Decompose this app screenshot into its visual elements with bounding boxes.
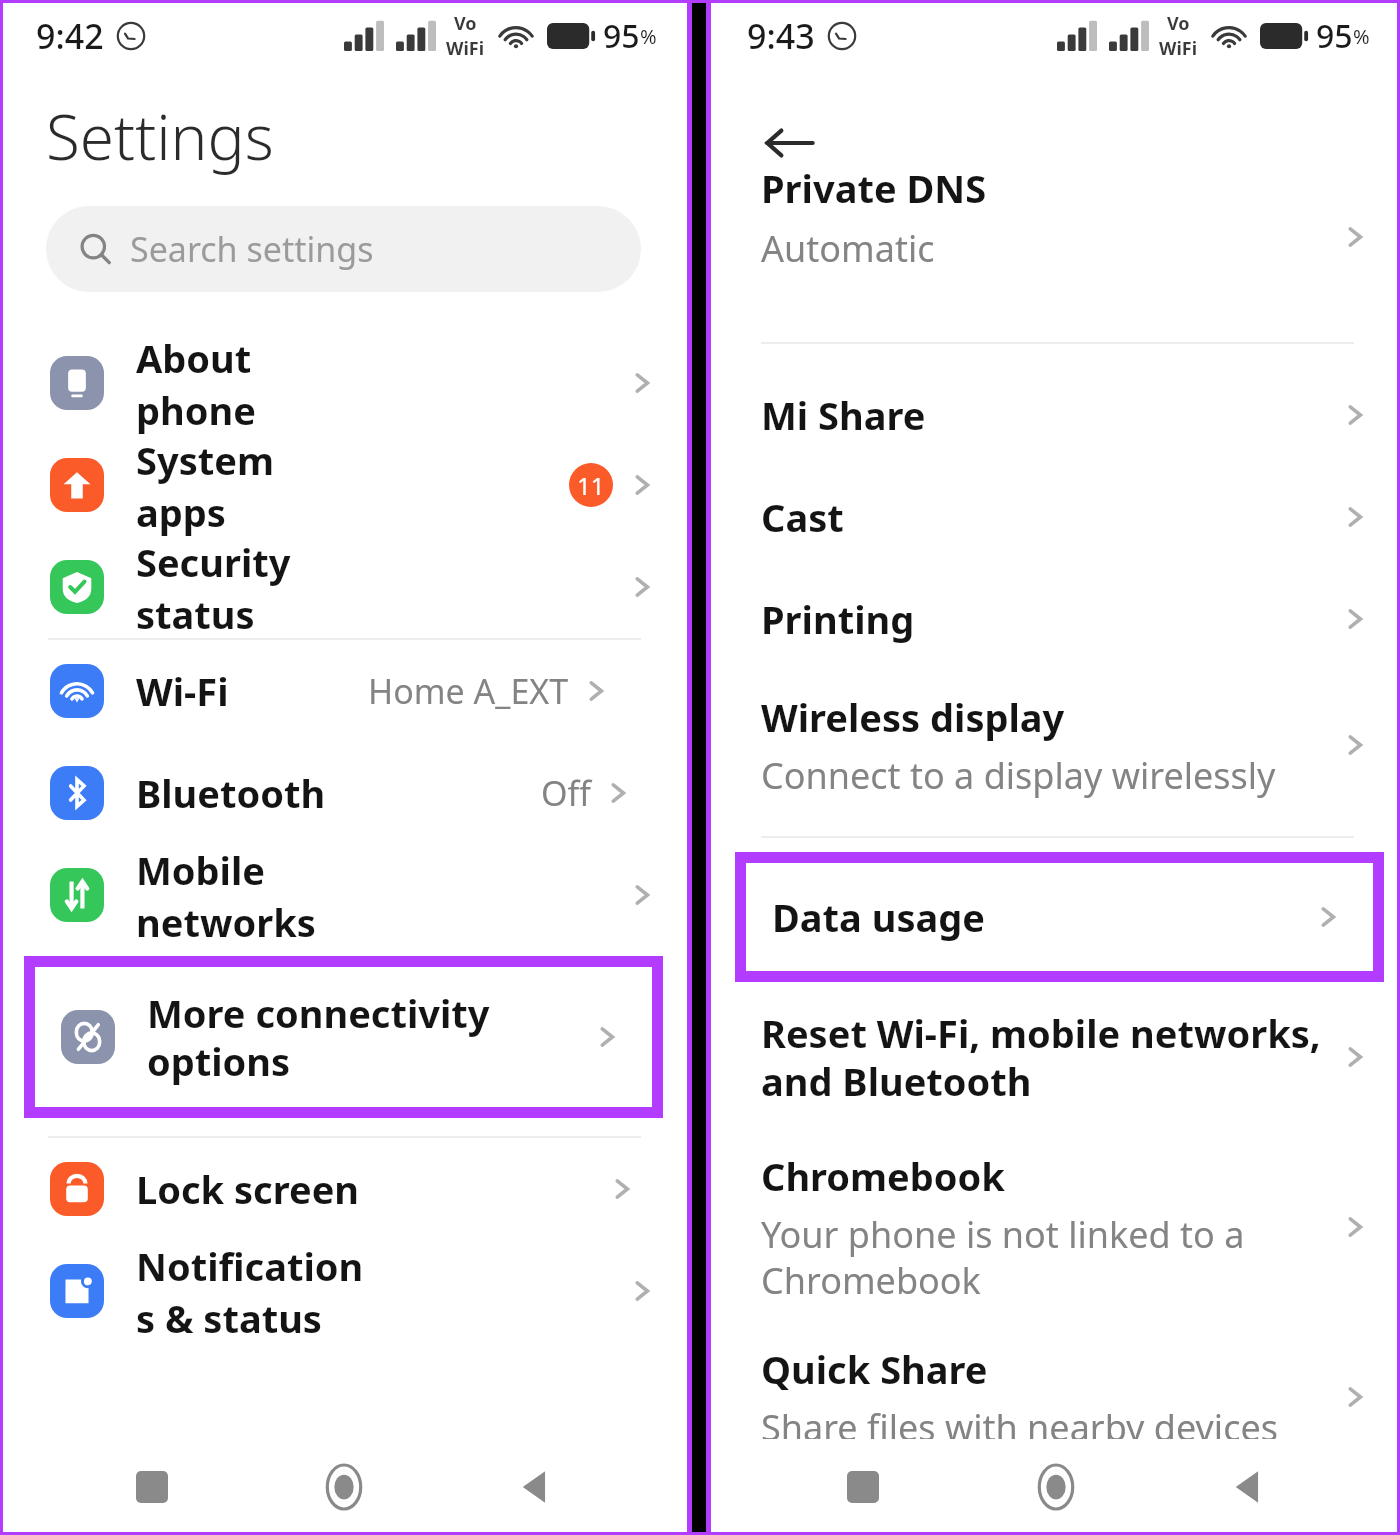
button[interactable]: Private DNS xyxy=(711,186,1400,316)
staticText: Vo xyxy=(1167,11,1190,36)
button[interactable]: Wireless display xyxy=(711,670,1400,820)
button[interactable]: Wi-Fi xyxy=(0,640,687,742)
staticText: Wireless display xyxy=(761,691,1065,743)
staticText: Bluetooth xyxy=(136,767,326,819)
staticText: Mobile networks xyxy=(136,844,380,946)
staticText: System apps updater xyxy=(136,434,352,536)
staticText: Quick Share xyxy=(761,1343,988,1395)
button[interactable]: Lock screen xyxy=(0,1138,687,1240)
staticText: 95 xyxy=(1316,14,1353,58)
button[interactable]: Quick Share xyxy=(711,1322,1400,1472)
staticText: Data usage xyxy=(772,891,1311,943)
staticText: WiFi xyxy=(1159,36,1198,61)
button[interactable]: Recents xyxy=(823,1447,903,1527)
staticText: 11 xyxy=(577,469,605,502)
staticText: Your phone is not linked to a Chromebook xyxy=(761,1210,1245,1305)
staticText: Wi-Fi xyxy=(136,665,229,717)
staticText: Chromebook xyxy=(761,1150,1005,1202)
staticText: % xyxy=(1353,23,1370,50)
button[interactable]: Recents xyxy=(112,1447,192,1527)
button[interactable]: More connectivity options xyxy=(35,967,652,1107)
button[interactable]: Bluetooth xyxy=(0,742,687,844)
button[interactable]: Search settings xyxy=(46,206,641,292)
staticText: % xyxy=(640,23,657,50)
staticText: Home A_EXT xyxy=(368,668,569,714)
staticText: 9:43 xyxy=(747,13,815,59)
staticText: Search settings xyxy=(130,226,374,272)
staticText: More connectivity options xyxy=(147,987,590,1087)
button[interactable]: Printing xyxy=(711,568,1400,670)
staticText: 9:42 xyxy=(36,13,104,59)
staticText: Settings xyxy=(46,94,274,178)
button[interactable]: Reset Wi-Fi, mobile networks, and Blueto… xyxy=(711,982,1400,1132)
staticText: Automatic xyxy=(761,224,935,273)
staticText: Cast xyxy=(761,491,844,543)
button[interactable]: Back xyxy=(747,100,833,186)
staticText: About phone xyxy=(136,332,380,434)
staticText: Printing xyxy=(761,593,915,645)
staticText: Notifications & status xyxy=(136,1240,380,1342)
button[interactable]: Chromebook xyxy=(711,1132,1400,1322)
staticText: Connect to a display wirelessly xyxy=(761,751,1276,800)
staticText: Off xyxy=(541,770,591,816)
button[interactable]: Back xyxy=(495,1447,575,1527)
button[interactable]: Mobile networks xyxy=(0,844,687,946)
staticText: Security status xyxy=(136,536,380,638)
button[interactable]: Data usage xyxy=(746,863,1373,971)
button[interactable]: Back xyxy=(1208,1447,1288,1527)
button[interactable]: Home xyxy=(304,1447,384,1527)
button[interactable]: Cast xyxy=(711,466,1400,568)
button[interactable]: Security status xyxy=(0,536,687,638)
staticText: Mi Share xyxy=(761,389,926,441)
staticText: Private DNS xyxy=(761,162,987,214)
button[interactable]: Mi Share xyxy=(711,364,1400,466)
staticText: Lock screen xyxy=(136,1163,360,1215)
staticText: WiFi xyxy=(446,36,485,61)
staticText: Reset Wi-Fi, mobile networks, and Blueto… xyxy=(761,1007,1321,1107)
staticText: Share files with nearby devices xyxy=(761,1403,1278,1452)
button[interactable]: Notifications & status xyxy=(0,1240,687,1342)
button[interactable]: About phone xyxy=(0,332,687,434)
staticText: 95 xyxy=(603,14,640,58)
button[interactable]: System apps updater xyxy=(0,434,687,536)
button[interactable]: Home xyxy=(1016,1447,1096,1527)
staticText: Vo xyxy=(454,11,477,36)
